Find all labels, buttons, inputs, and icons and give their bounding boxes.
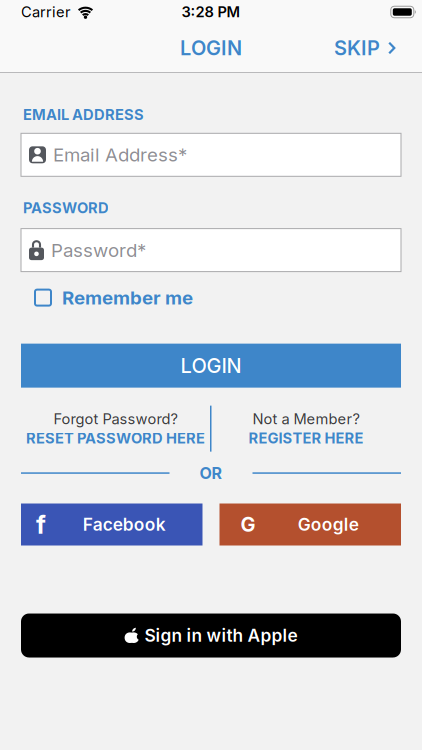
staticText: 3:28 PM bbox=[181, 3, 240, 21]
staticText: SKIP bbox=[334, 36, 380, 60]
staticText: Sign in with Apple bbox=[144, 625, 297, 646]
button[interactable]: SKIP bbox=[334, 36, 396, 60]
button[interactable]: Forgot Password? bbox=[21, 410, 210, 447]
button[interactable]: Remember me bbox=[21, 287, 193, 309]
staticText: Carrier bbox=[21, 3, 71, 21]
staticText: Remember me bbox=[62, 287, 193, 309]
staticText: Password* bbox=[51, 239, 146, 261]
staticText: EMAIL ADDRESS bbox=[23, 106, 144, 123]
staticText: Google bbox=[298, 514, 359, 535]
button[interactable]: Sign in with Apple bbox=[21, 613, 401, 657]
staticText: LOGIN bbox=[180, 36, 242, 60]
staticText: LOGIN bbox=[180, 354, 241, 377]
button[interactable]: Not a Member? bbox=[211, 410, 400, 447]
staticText: PASSWORD bbox=[23, 199, 109, 217]
button[interactable]: Email Address* bbox=[21, 133, 401, 176]
button[interactable]: Password* bbox=[21, 229, 401, 272]
staticText: Forgot Password? bbox=[53, 410, 177, 428]
button[interactable]: f bbox=[21, 503, 202, 545]
staticText: REGISTER HERE bbox=[248, 430, 363, 447]
staticText: Not a Member? bbox=[252, 410, 359, 428]
button[interactable]: LOGIN bbox=[21, 344, 401, 388]
button[interactable]: G bbox=[219, 503, 401, 545]
staticText: Facebook bbox=[83, 514, 166, 535]
staticText: RESET PASSWORD HERE bbox=[26, 430, 205, 447]
staticText: f bbox=[36, 510, 46, 539]
staticText: OR bbox=[199, 464, 222, 482]
staticText: G bbox=[240, 513, 255, 536]
staticText: Email Address* bbox=[53, 144, 187, 166]
